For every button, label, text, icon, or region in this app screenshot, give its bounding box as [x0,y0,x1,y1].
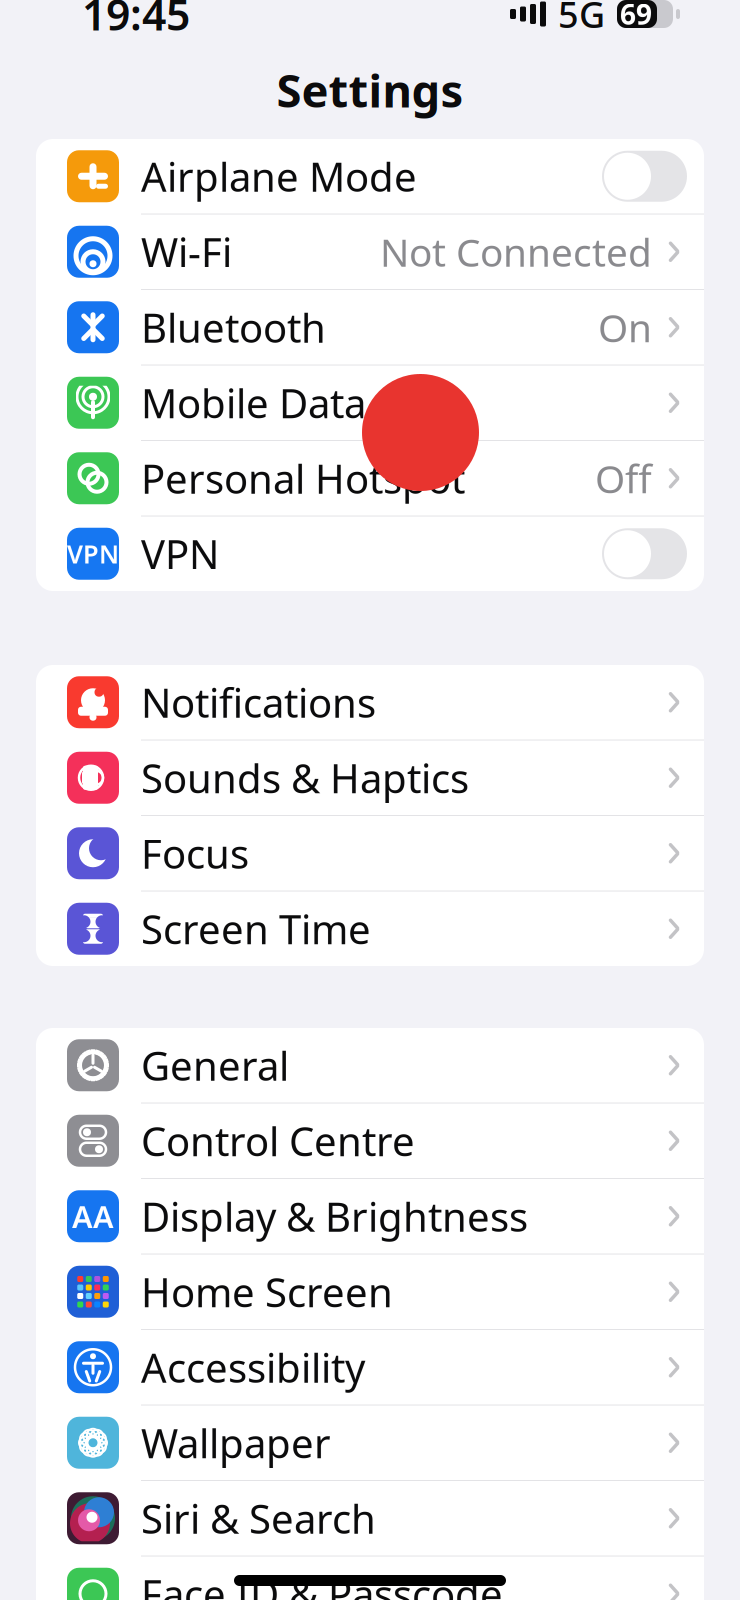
staticText: Sounds & Haptics [141,751,469,804]
staticText: Settings [276,60,463,120]
staticText: Not Connected [380,226,652,277]
staticText: Screen Time [141,902,371,955]
staticText: 69 [620,0,652,33]
staticText: 5G [558,0,605,38]
button[interactable]: Face ID & Passcode [36,1556,704,1600]
staticText: AA [72,1196,114,1237]
staticText: Off [595,453,652,504]
button[interactable]: Wallpaper [36,1405,704,1481]
staticText: VPN [141,527,219,580]
staticText: Airplane Mode [141,150,417,203]
button[interactable]: AA [36,1179,704,1254]
staticText: Mobile Data [141,376,366,429]
staticText: Display & Brightness [141,1190,528,1243]
staticText: Face ID & Passcode [141,1567,503,1600]
staticText: Personal Hotspot [141,452,465,505]
staticText: Wi-Fi [141,225,232,278]
button[interactable]: Home Screen [36,1254,704,1330]
button[interactable]: Siri & Search [36,1481,704,1556]
button[interactable]: General [36,1028,704,1103]
button[interactable]: Notifications [36,665,704,740]
staticText: Siri & Search [141,1492,376,1545]
staticText: Wallpaper [141,1416,331,1469]
button[interactable]: Focus [36,816,704,891]
button[interactable]: Bluetooth [36,290,704,365]
button[interactable]: Accessibility [36,1330,704,1405]
staticText: On [598,302,652,353]
button[interactable]: Sounds & Haptics [36,740,704,816]
staticText: Bluetooth [141,301,326,354]
staticText: VPN [67,537,119,570]
button[interactable]: Control Centre [36,1103,704,1179]
button[interactable]: Airplane Mode [36,139,704,214]
staticText: Notifications [141,676,376,729]
staticText: General [141,1039,289,1092]
staticText: Home Screen [141,1265,393,1318]
staticText: Control Centre [141,1114,415,1167]
button[interactable]: Personal Hotspot [36,441,704,516]
staticText: 19:45 [82,0,190,42]
button[interactable]: VPN [36,516,704,591]
staticText: Focus [141,827,249,880]
button[interactable]: Wi-Fi [36,214,704,290]
button[interactable]: Mobile Data [36,365,704,441]
staticText: Accessibility [141,1341,365,1394]
button[interactable]: Screen Time [36,891,704,966]
